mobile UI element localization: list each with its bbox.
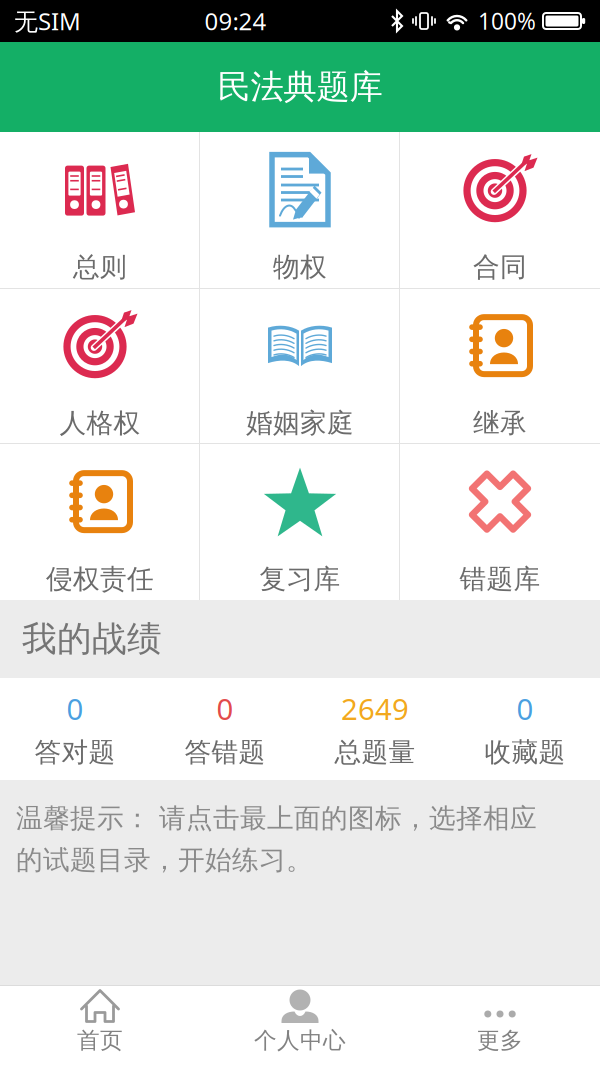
button[interactable]: 合同: [400, 132, 600, 288]
staticText: 0: [516, 689, 533, 728]
staticText: 错题库: [459, 563, 540, 595]
staticText: 答对题: [34, 736, 115, 769]
button[interactable]: 人格权: [0, 289, 200, 443]
button[interactable]: 婚姻家庭: [200, 289, 400, 443]
staticText: 继承: [473, 407, 527, 439]
button[interactable]: 侵权责任: [0, 444, 200, 600]
staticText: 收藏题: [484, 736, 565, 769]
staticText: 复习库: [259, 563, 340, 595]
staticText: 答错题: [184, 736, 265, 769]
button[interactable]: 个人中心: [200, 985, 400, 1067]
button[interactable]: 更多: [400, 985, 600, 1067]
staticText: 总则: [73, 251, 127, 283]
staticText: 09:24: [204, 5, 266, 37]
staticText: 总题量: [334, 736, 415, 769]
staticText: 2649: [341, 689, 409, 728]
staticText: 100%: [478, 6, 536, 36]
staticText: 婚姻家庭: [246, 407, 354, 439]
button[interactable]: 首页: [0, 985, 200, 1067]
staticText: 物权: [273, 251, 327, 283]
button[interactable]: 继承: [400, 289, 600, 443]
staticText: 我的战绩: [22, 618, 162, 660]
staticText: 民法典题库: [217, 66, 382, 107]
staticText: 温馨提示： 请点击最上面的图标，选择相应的试题目录，开始练习。: [16, 802, 537, 876]
staticText: 首页: [77, 1026, 123, 1054]
staticText: 0: [66, 689, 83, 728]
button[interactable]: 总则: [0, 132, 200, 288]
button[interactable]: 物权: [200, 132, 400, 288]
staticText: 更多: [477, 1026, 523, 1054]
staticText: 个人中心: [254, 1026, 346, 1054]
button[interactable]: 复习库: [200, 444, 400, 600]
button[interactable]: 错题库: [400, 444, 600, 600]
staticText: 无SIM: [14, 5, 81, 37]
staticText: 人格权: [59, 407, 140, 439]
staticText: 侵权责任: [46, 563, 154, 595]
staticText: 合同: [473, 251, 527, 283]
staticText: 0: [216, 689, 233, 728]
